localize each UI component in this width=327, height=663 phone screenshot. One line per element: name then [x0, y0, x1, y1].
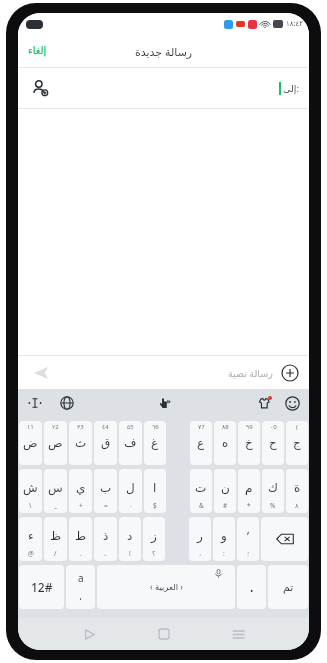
- staticText: ي: [76, 481, 86, 495]
- button[interactable]: ٥5: [119, 421, 142, 465]
- staticText: س: [48, 481, 63, 495]
- staticText: ا: [153, 481, 157, 495]
- button[interactable]: Add contact: [30, 78, 50, 98]
- button[interactable]: ١1: [19, 421, 42, 465]
- button[interactable]: ٦6: [144, 421, 166, 465]
- staticText: ض: [23, 436, 38, 450]
- button[interactable]: ن: [214, 469, 236, 513]
- staticText: ح: [269, 436, 277, 450]
- button[interactable]: Attach: [281, 364, 299, 382]
- staticText: ٧7: [198, 423, 205, 431]
- button[interactable]: Send: [30, 362, 52, 384]
- button[interactable]: ʼ: [237, 517, 259, 561]
- staticText: ٠0: [270, 423, 277, 431]
- button[interactable]: Recents: [225, 621, 251, 647]
- staticText: =: [104, 501, 108, 510]
- staticText: &: [199, 501, 204, 510]
- button[interactable]: Back: [76, 621, 102, 647]
- button[interactable]: ‹ العربية ›: [97, 565, 235, 609]
- staticText: رسالة جديدة: [135, 44, 193, 59]
- staticText: ف: [124, 436, 137, 450]
- button[interactable]: ت: [190, 469, 212, 513]
- staticText: ʼ: [247, 528, 250, 544]
- staticText: ١1: [27, 423, 34, 431]
- button[interactable]: و: [213, 517, 235, 561]
- staticText: ٤4: [102, 423, 109, 431]
- staticText: ،: [79, 592, 82, 602]
- button[interactable]: ذ: [94, 517, 117, 561]
- staticText: ص: [48, 436, 63, 450]
- button[interactable]: س: [44, 469, 67, 513]
- button[interactable]: Emoji: [283, 394, 301, 412]
- button[interactable]: ب: [94, 469, 117, 513]
- staticText: ٨8: [222, 423, 229, 431]
- button[interactable]: a: [66, 565, 95, 609]
- staticText: *: [247, 501, 251, 510]
- button[interactable]: ٢2: [44, 421, 67, 465]
- staticText: .: [250, 579, 254, 595]
- staticText: غ: [151, 436, 159, 450]
- button[interactable]: Language: [58, 394, 76, 412]
- button[interactable]: .: [237, 565, 266, 609]
- button[interactable]: د: [119, 517, 141, 561]
- staticText: تم: [283, 581, 294, 594]
- staticText: 12#: [31, 579, 53, 595]
- button[interactable]: ي: [69, 469, 92, 513]
- staticText: ٨: [295, 502, 299, 510]
- button[interactable]: Home: [151, 621, 177, 647]
- button[interactable]: ٤4: [94, 421, 117, 465]
- staticText: (: [296, 423, 298, 431]
- staticText: و: [221, 529, 227, 543]
- button[interactable]: Add contact: [18, 68, 309, 108]
- button[interactable]: Text cursor: [26, 394, 44, 412]
- button[interactable]: ط: [69, 517, 92, 561]
- button[interactable]: ز: [143, 517, 165, 561]
- button[interactable]: ل: [119, 469, 142, 513]
- button[interactable]: ا: [144, 469, 166, 513]
- button[interactable]: ظ: [44, 517, 67, 561]
- button[interactable]: ٣3: [69, 421, 92, 465]
- staticText: #: [223, 501, 228, 510]
- staticText: ذ: [103, 529, 109, 543]
- staticText: @: [28, 549, 34, 558]
- staticText: ج: [293, 436, 301, 450]
- staticText: ‹ العربية ›: [150, 581, 183, 593]
- button[interactable]: ش: [19, 469, 42, 513]
- button[interactable]: ٧7: [190, 421, 212, 465]
- staticText: م: [245, 481, 253, 495]
- staticText: ق: [101, 436, 111, 450]
- button[interactable]: تم: [268, 565, 308, 609]
- staticText: ٠: [129, 502, 133, 510]
- button[interactable]: ر: [189, 517, 211, 561]
- button[interactable]: ٩9: [238, 421, 260, 465]
- staticText: +: [79, 501, 83, 510]
- staticText: ع: [197, 436, 205, 450]
- staticText: ؛: [247, 550, 250, 558]
- staticText: د: [127, 529, 133, 543]
- button[interactable]: ك: [262, 469, 284, 513]
- button[interactable]: م: [238, 469, 260, 513]
- staticText: .: [80, 549, 82, 558]
- staticText: إلى:: [283, 82, 299, 95]
- staticText: ٢2: [52, 423, 59, 431]
- staticText: ث: [75, 436, 87, 450]
- button[interactable]: Backspace: [261, 517, 308, 561]
- button[interactable]: ة: [286, 469, 308, 513]
- staticText: ت: [195, 481, 207, 495]
- staticText: a: [78, 571, 84, 585]
- staticText: ٦6: [152, 423, 159, 431]
- staticText: $: [153, 501, 157, 510]
- button[interactable]: (: [286, 421, 308, 465]
- staticText: ه: [222, 436, 229, 450]
- button[interactable]: ٨8: [214, 421, 236, 465]
- staticText: _: [54, 501, 57, 510]
- button[interactable]: 12#: [19, 565, 64, 609]
- button[interactable]: إلغاء: [18, 40, 57, 62]
- staticText: ر: [197, 529, 203, 543]
- staticText: ء: [28, 529, 34, 543]
- button[interactable]: ء: [19, 517, 42, 561]
- button[interactable]: Handwriting: [154, 393, 174, 413]
- button[interactable]: Stickers: [255, 394, 273, 412]
- staticText: \: [29, 501, 32, 510]
- button[interactable]: ٠0: [262, 421, 284, 465]
